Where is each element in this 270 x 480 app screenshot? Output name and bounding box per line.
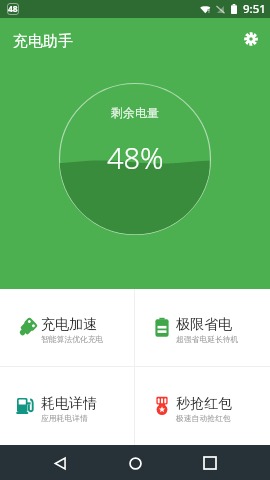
staticText: 充电助手 <box>13 32 73 48</box>
staticText: 秒抢红包 <box>176 395 232 413</box>
button[interactable]: 极限省电 <box>135 289 270 366</box>
button[interactable]: Home <box>120 448 150 478</box>
button[interactable]: 充电加速 <box>0 289 134 366</box>
staticText: 极限省电 <box>176 316 232 334</box>
button[interactable]: Back <box>45 448 75 478</box>
staticText: 智能算法优化充电 <box>41 334 104 344</box>
staticText: 极速自动抢红包 <box>176 413 231 423</box>
staticText: 耗电详情 <box>41 395 97 413</box>
staticText: 应用耗电详情 <box>41 413 88 423</box>
button[interactable]: 耗电详情 <box>0 367 134 445</box>
staticText: 48% <box>107 138 164 177</box>
staticText: 充电加速 <box>41 316 97 334</box>
staticText: 超强省电延长待机 <box>176 334 239 344</box>
button[interactable]: 秒抢红包 <box>135 367 270 445</box>
button[interactable]: Settings <box>240 30 262 48</box>
staticText: 剩余电量 <box>111 105 159 120</box>
button[interactable]: Recent apps <box>195 448 225 478</box>
staticText: 9:51 <box>243 1 266 17</box>
staticText: 48 <box>8 3 18 15</box>
